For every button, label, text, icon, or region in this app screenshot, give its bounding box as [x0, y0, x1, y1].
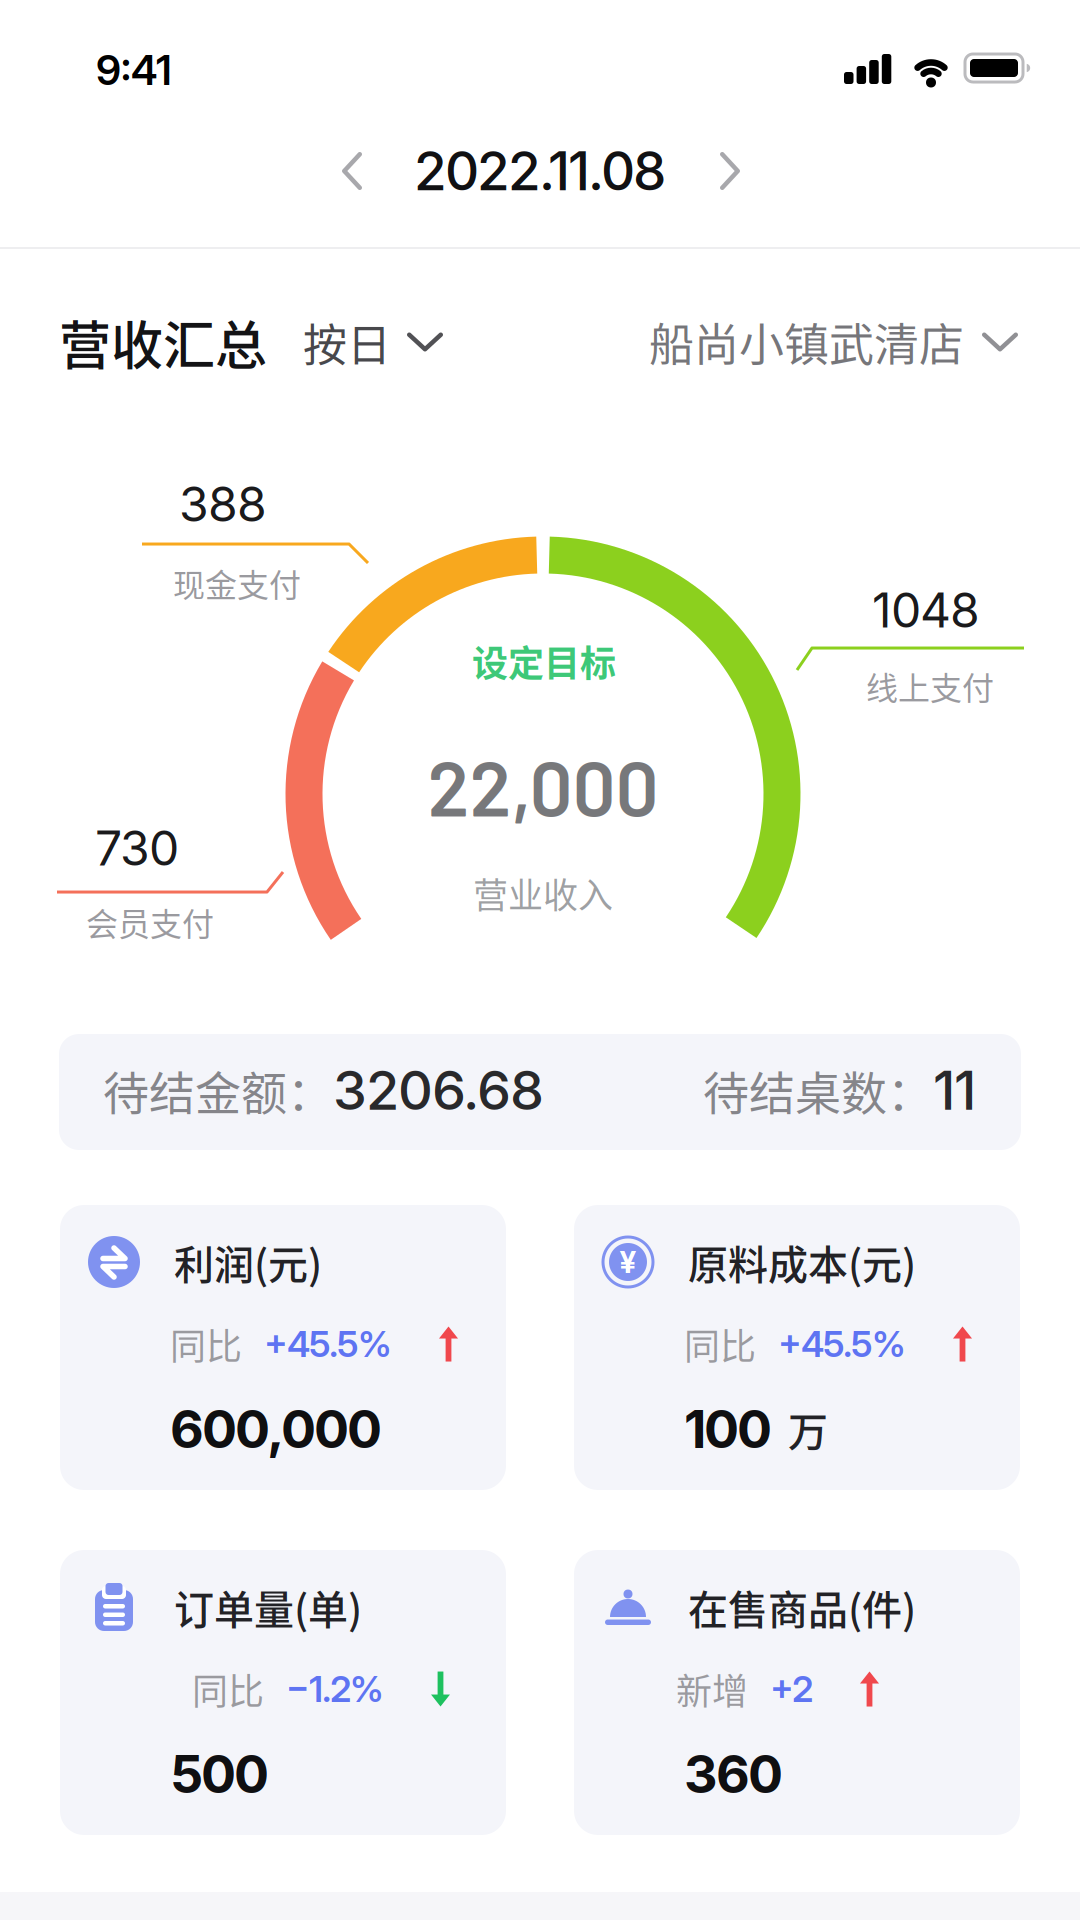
staticText: 360: [684, 1742, 783, 1805]
staticText: 利润(元): [174, 1233, 322, 1291]
staticText: 同比: [170, 1318, 242, 1370]
staticText: 在售商品(件): [688, 1578, 916, 1636]
staticText: 22,000: [427, 740, 658, 832]
staticText: 2022.11.08: [414, 139, 666, 203]
staticText: 9:41: [96, 45, 172, 95]
staticText: 730: [95, 819, 179, 877]
staticText: +45.5%: [264, 1322, 392, 1366]
staticText: 600,000: [170, 1397, 382, 1460]
staticText: 万: [788, 1400, 828, 1458]
staticText: 营业收入: [473, 868, 613, 918]
staticText: 同比: [192, 1663, 264, 1715]
button[interactable]: 船尚小镇武清店: [649, 309, 1018, 375]
staticText: 新增: [676, 1663, 748, 1715]
staticText: ¥: [619, 1244, 636, 1280]
staticText: 500: [170, 1742, 269, 1805]
button[interactable]: Next day: [706, 138, 754, 204]
staticText: +2: [770, 1667, 813, 1711]
staticText: +45.5%: [778, 1322, 906, 1366]
staticText: 3206.68: [333, 1057, 544, 1123]
staticText: 设定目标: [472, 635, 616, 687]
staticText: 同比: [684, 1318, 756, 1370]
button[interactable]: 按日: [303, 310, 443, 374]
staticText: 船尚小镇武清店: [649, 309, 964, 375]
staticText: 现金支付: [173, 560, 301, 606]
staticText: 100: [684, 1397, 772, 1460]
button[interactable]: Previous day: [328, 138, 376, 204]
staticText: 待结金额：: [103, 1057, 333, 1123]
staticText: 按日: [303, 310, 391, 374]
staticText: 线上支付: [866, 663, 994, 709]
staticText: 11: [933, 1057, 976, 1123]
staticText: 1048: [872, 581, 980, 639]
button[interactable]: 设定目标: [472, 635, 616, 687]
staticText: 会员支付: [86, 899, 214, 945]
staticText: −1.2%: [286, 1667, 384, 1711]
staticText: 营收汇总: [59, 304, 267, 380]
staticText: 订单量(单): [174, 1578, 362, 1636]
button[interactable]: 2022.11.08: [414, 139, 666, 203]
staticText: 待结桌数：: [703, 1057, 933, 1123]
staticText: 388: [179, 475, 267, 533]
staticText: 原料成本(元): [688, 1233, 916, 1291]
